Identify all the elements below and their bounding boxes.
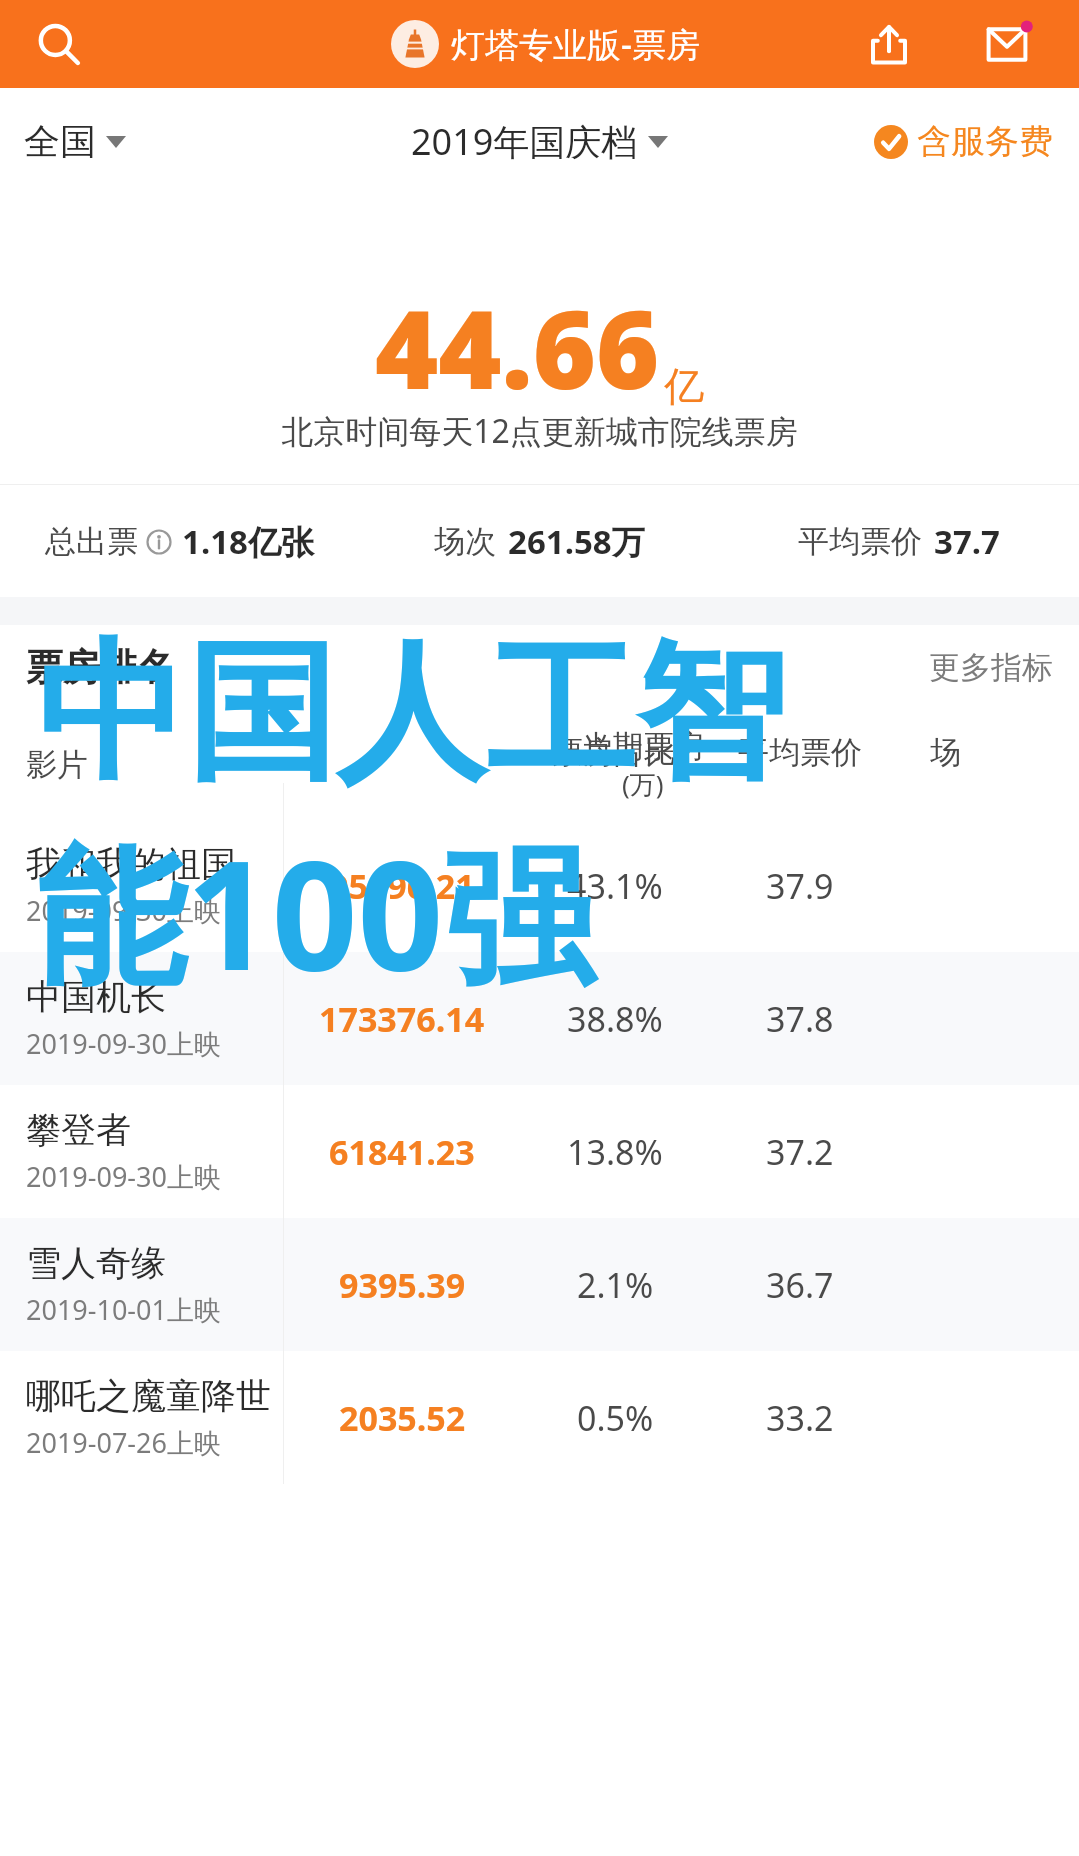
staticText: 61841.23 (329, 1129, 475, 1175)
staticText: 2019-09-30上映 (26, 1025, 221, 1062)
staticText: 173376.14 (319, 996, 485, 1042)
staticText: 13.8% (567, 1129, 663, 1175)
staticText: 2035.52 (339, 1395, 466, 1441)
staticText: 含服务费 (917, 120, 1053, 163)
staticText: 总出票 (45, 522, 138, 561)
button[interactable]: 2019年国庆档 (411, 117, 668, 166)
staticText: 更多指标 (929, 648, 1053, 687)
staticText: 亿 (664, 361, 704, 411)
staticText: 43.1% (567, 863, 663, 909)
staticText: 攀登者 (26, 1108, 131, 1152)
staticText: 票房排名 (26, 644, 174, 691)
staticText: 灯塔专业版-票房 (451, 21, 700, 67)
staticText: 影片 (26, 745, 88, 784)
staticText: 中国机长 (26, 975, 166, 1019)
staticText: 1.18亿张 (182, 519, 314, 564)
staticText: 能100强 (36, 810, 594, 1015)
button[interactable]: 全国 (24, 119, 126, 164)
staticText: 44.66 (375, 274, 660, 421)
staticText: 37.7 (934, 519, 1000, 564)
button[interactable]: Share (859, 14, 919, 74)
staticText: 场次 (434, 522, 496, 561)
button[interactable]: 雪人奇缘 (0, 1218, 1079, 1351)
staticText: 2.1% (577, 1262, 654, 1308)
button[interactable]: Messages (975, 12, 1039, 76)
staticText: 北京时间每天12点更新城市院线票房 (281, 409, 798, 453)
staticText: 2019-07-26上映 (26, 1424, 221, 1461)
staticText: 37.2 (766, 1129, 834, 1175)
staticText: 36.7 (766, 1262, 834, 1308)
staticText: (万) (622, 766, 664, 802)
staticText: 38.8% (567, 996, 663, 1042)
staticText: 我和我的祖国 (26, 842, 236, 886)
staticText: 261.58万 (508, 519, 645, 564)
staticText: 哪吒之魔童降世 (26, 1374, 271, 1418)
button[interactable]: 含服务费 (874, 120, 1053, 163)
staticText: 雪人奇缘 (26, 1241, 166, 1285)
staticText: 平均票价 (798, 522, 922, 561)
staticText: 9395.39 (339, 1262, 466, 1308)
staticText: 中国人工智 (36, 620, 786, 809)
staticText: 33.2 (766, 1395, 834, 1441)
button[interactable]: 更多指标 (929, 648, 1053, 687)
staticText: 0.5% (577, 1395, 654, 1441)
staticText: 2019年国庆档 (411, 117, 638, 166)
button[interactable]: 中国机长 (0, 952, 1079, 1085)
staticText: 当期票房 (581, 727, 705, 766)
staticText: 场 (930, 733, 961, 772)
button[interactable]: Search (28, 14, 88, 74)
staticText: 票房占比 (552, 733, 676, 772)
button[interactable]: 灯塔专业版-票房 (391, 20, 700, 68)
staticText: 37.8 (766, 996, 834, 1042)
staticText: 2019-09-30上映 (26, 892, 221, 929)
staticText: 全国 (24, 119, 96, 164)
staticText: 2019-10-01上映 (26, 1291, 221, 1328)
staticText: 平均票价 (738, 733, 862, 772)
button[interactable]: 攀登者 (0, 1085, 1079, 1218)
staticText: 37.9 (766, 863, 834, 909)
button[interactable]: 我和我的祖国 (0, 819, 1079, 952)
button[interactable]: 哪吒之魔童降世 (0, 1351, 1079, 1484)
staticText: 2019-09-30上映 (26, 1158, 221, 1195)
staticText: 95096.21 (329, 863, 475, 909)
